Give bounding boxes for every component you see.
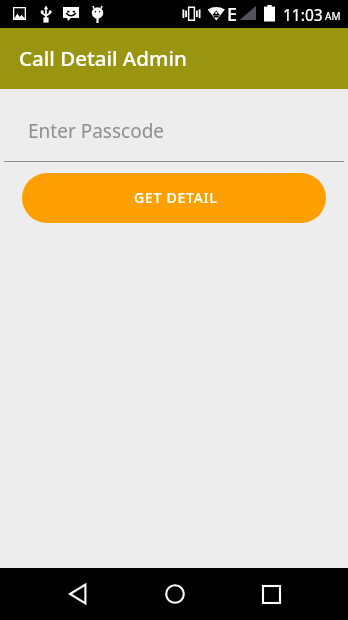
staticText: GET DETAIL [134,188,218,207]
button[interactable]: GET DETAIL [22,173,326,223]
button[interactable]: Enter Passcode [0,89,348,161]
button[interactable]: Home [148,568,201,620]
button[interactable]: Back [51,568,104,620]
staticText: AM [325,9,341,23]
staticText: E [227,2,238,27]
staticText: Call Detail Admin [19,44,187,72]
staticText: 11:03 [283,4,323,25]
staticText: Enter Passcode [28,118,165,144]
button[interactable]: Recents [245,568,298,620]
